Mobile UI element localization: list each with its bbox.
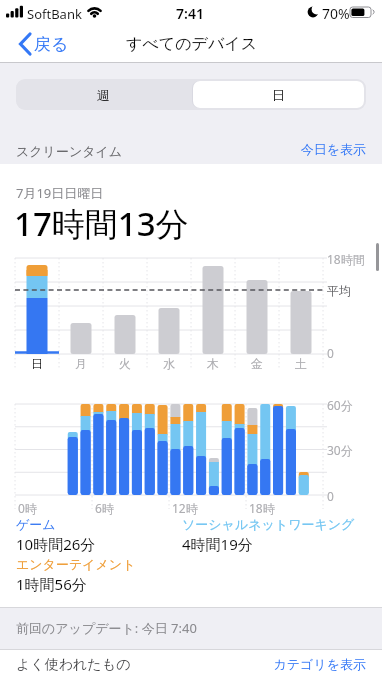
staticText: 0時	[18, 500, 37, 516]
button[interactable]: カテゴリを表示	[246, 654, 366, 674]
staticText: スクリーンタイム	[16, 143, 123, 159]
staticText: 木	[203, 356, 223, 371]
staticText: カテゴリを表示	[246, 656, 366, 672]
staticText: 土	[291, 356, 311, 371]
button[interactable]: 今日を表示	[246, 141, 366, 159]
staticText: 18時	[249, 500, 275, 516]
staticText: 70%	[322, 4, 350, 23]
staticText: 4時間19分	[182, 534, 253, 554]
staticText: 平均	[327, 283, 351, 298]
staticText: 30分	[327, 442, 353, 458]
staticText: 戻る	[34, 34, 69, 55]
staticText: 60分	[327, 397, 353, 413]
staticText: SoftBank	[27, 5, 82, 23]
button[interactable]: 日	[193, 81, 364, 108]
staticText: 火	[115, 356, 135, 371]
staticText: すべてのデバイス	[126, 34, 257, 54]
staticText: ゲーム	[16, 516, 56, 532]
staticText: 日	[272, 87, 285, 103]
staticText: 週	[97, 87, 110, 103]
staticText: エンターテイメント	[16, 556, 136, 572]
staticText: 1時間56分	[16, 574, 87, 594]
staticText: 6時	[95, 500, 114, 516]
staticText: 日	[27, 356, 47, 371]
staticText: 12時	[172, 500, 198, 516]
staticText: 10時間26分	[16, 534, 96, 554]
staticText: 月	[71, 356, 91, 371]
staticText: 0	[327, 345, 334, 361]
staticText: 金	[247, 356, 267, 371]
staticText: 0	[327, 488, 334, 504]
staticText: よく使われたもの	[16, 656, 131, 674]
staticText: 前回のアップデート: 今日 7:40	[16, 619, 197, 637]
staticText: 18時間	[327, 251, 365, 267]
staticText: 7:41	[160, 4, 220, 23]
staticText: 今日を表示	[246, 141, 366, 157]
button[interactable]: 週	[16, 79, 191, 110]
staticText: ソーシャルネットワーキング	[182, 516, 355, 532]
staticText: 水	[159, 356, 179, 371]
button[interactable]: 戻る	[34, 25, 69, 63]
staticText: 17時間13分	[14, 201, 189, 246]
staticText: 7月19日日曜日	[16, 184, 104, 202]
